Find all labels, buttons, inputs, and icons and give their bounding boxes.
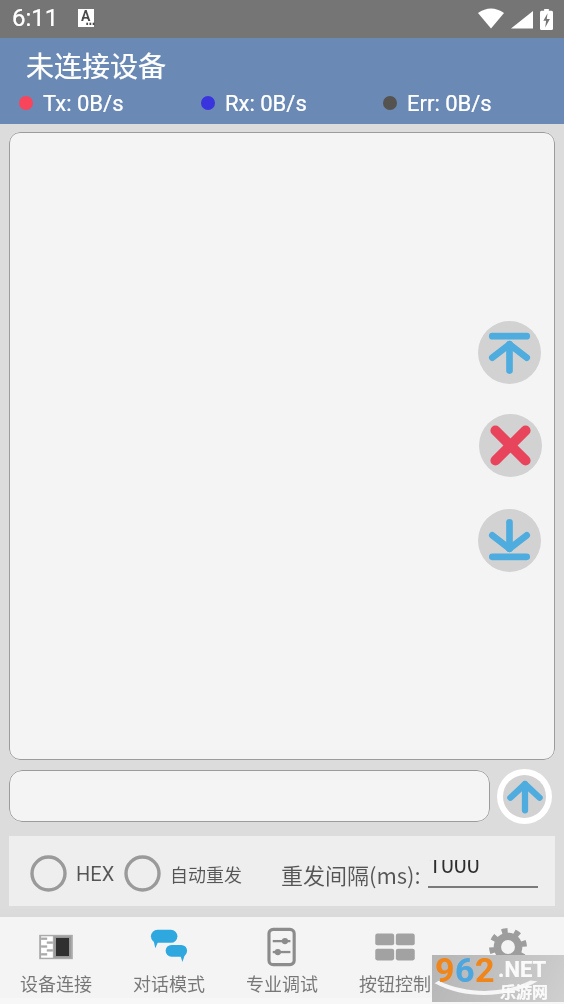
button[interactable]: 对话模式 <box>112 917 225 1004</box>
button[interactable]: 设备连接 <box>0 917 112 1004</box>
button[interactable]: 专业调试 <box>225 917 338 1004</box>
staticText: 对话模式 <box>133 970 205 996</box>
button[interactable]: 1000 <box>428 844 538 890</box>
staticText: 设备连接 <box>20 970 92 996</box>
staticText: 2 <box>475 950 495 990</box>
button[interactable]: 自动重发 <box>124 855 242 892</box>
button[interactable]: HEX <box>30 855 115 892</box>
button[interactable]: Clear log <box>479 414 542 477</box>
button[interactable]: 按钮控制 <box>338 917 451 1004</box>
staticText: 设置 <box>490 970 526 996</box>
staticText: 6 <box>455 950 475 990</box>
staticText: 1000 <box>428 860 480 873</box>
staticText: HEX <box>76 862 115 885</box>
button[interactable]: 设置 <box>451 917 564 1004</box>
staticText: .NET <box>498 957 547 983</box>
staticText: Rx: 0B/s <box>225 91 307 117</box>
button[interactable]: Scroll to bottom <box>478 509 541 572</box>
staticText: 6:11 <box>12 4 59 32</box>
staticText: 重发间隔(ms): <box>281 858 421 890</box>
button[interactable] <box>9 770 490 822</box>
staticText: A <box>81 8 91 24</box>
staticText: 乐游网 <box>500 979 549 1002</box>
staticText: 专业调试 <box>246 970 318 996</box>
staticText: Tx: 0B/s <box>43 91 124 117</box>
staticText: 未连接设备 <box>26 45 167 86</box>
staticText: 按钮控制 <box>359 970 431 996</box>
staticText: Err: 0B/s <box>407 91 492 117</box>
staticText: 自动重发 <box>170 861 242 887</box>
button[interactable] <box>9 132 555 760</box>
button[interactable]: Scroll to top <box>478 321 541 384</box>
staticText: 9 <box>435 950 455 990</box>
button[interactable]: Send <box>503 775 546 818</box>
